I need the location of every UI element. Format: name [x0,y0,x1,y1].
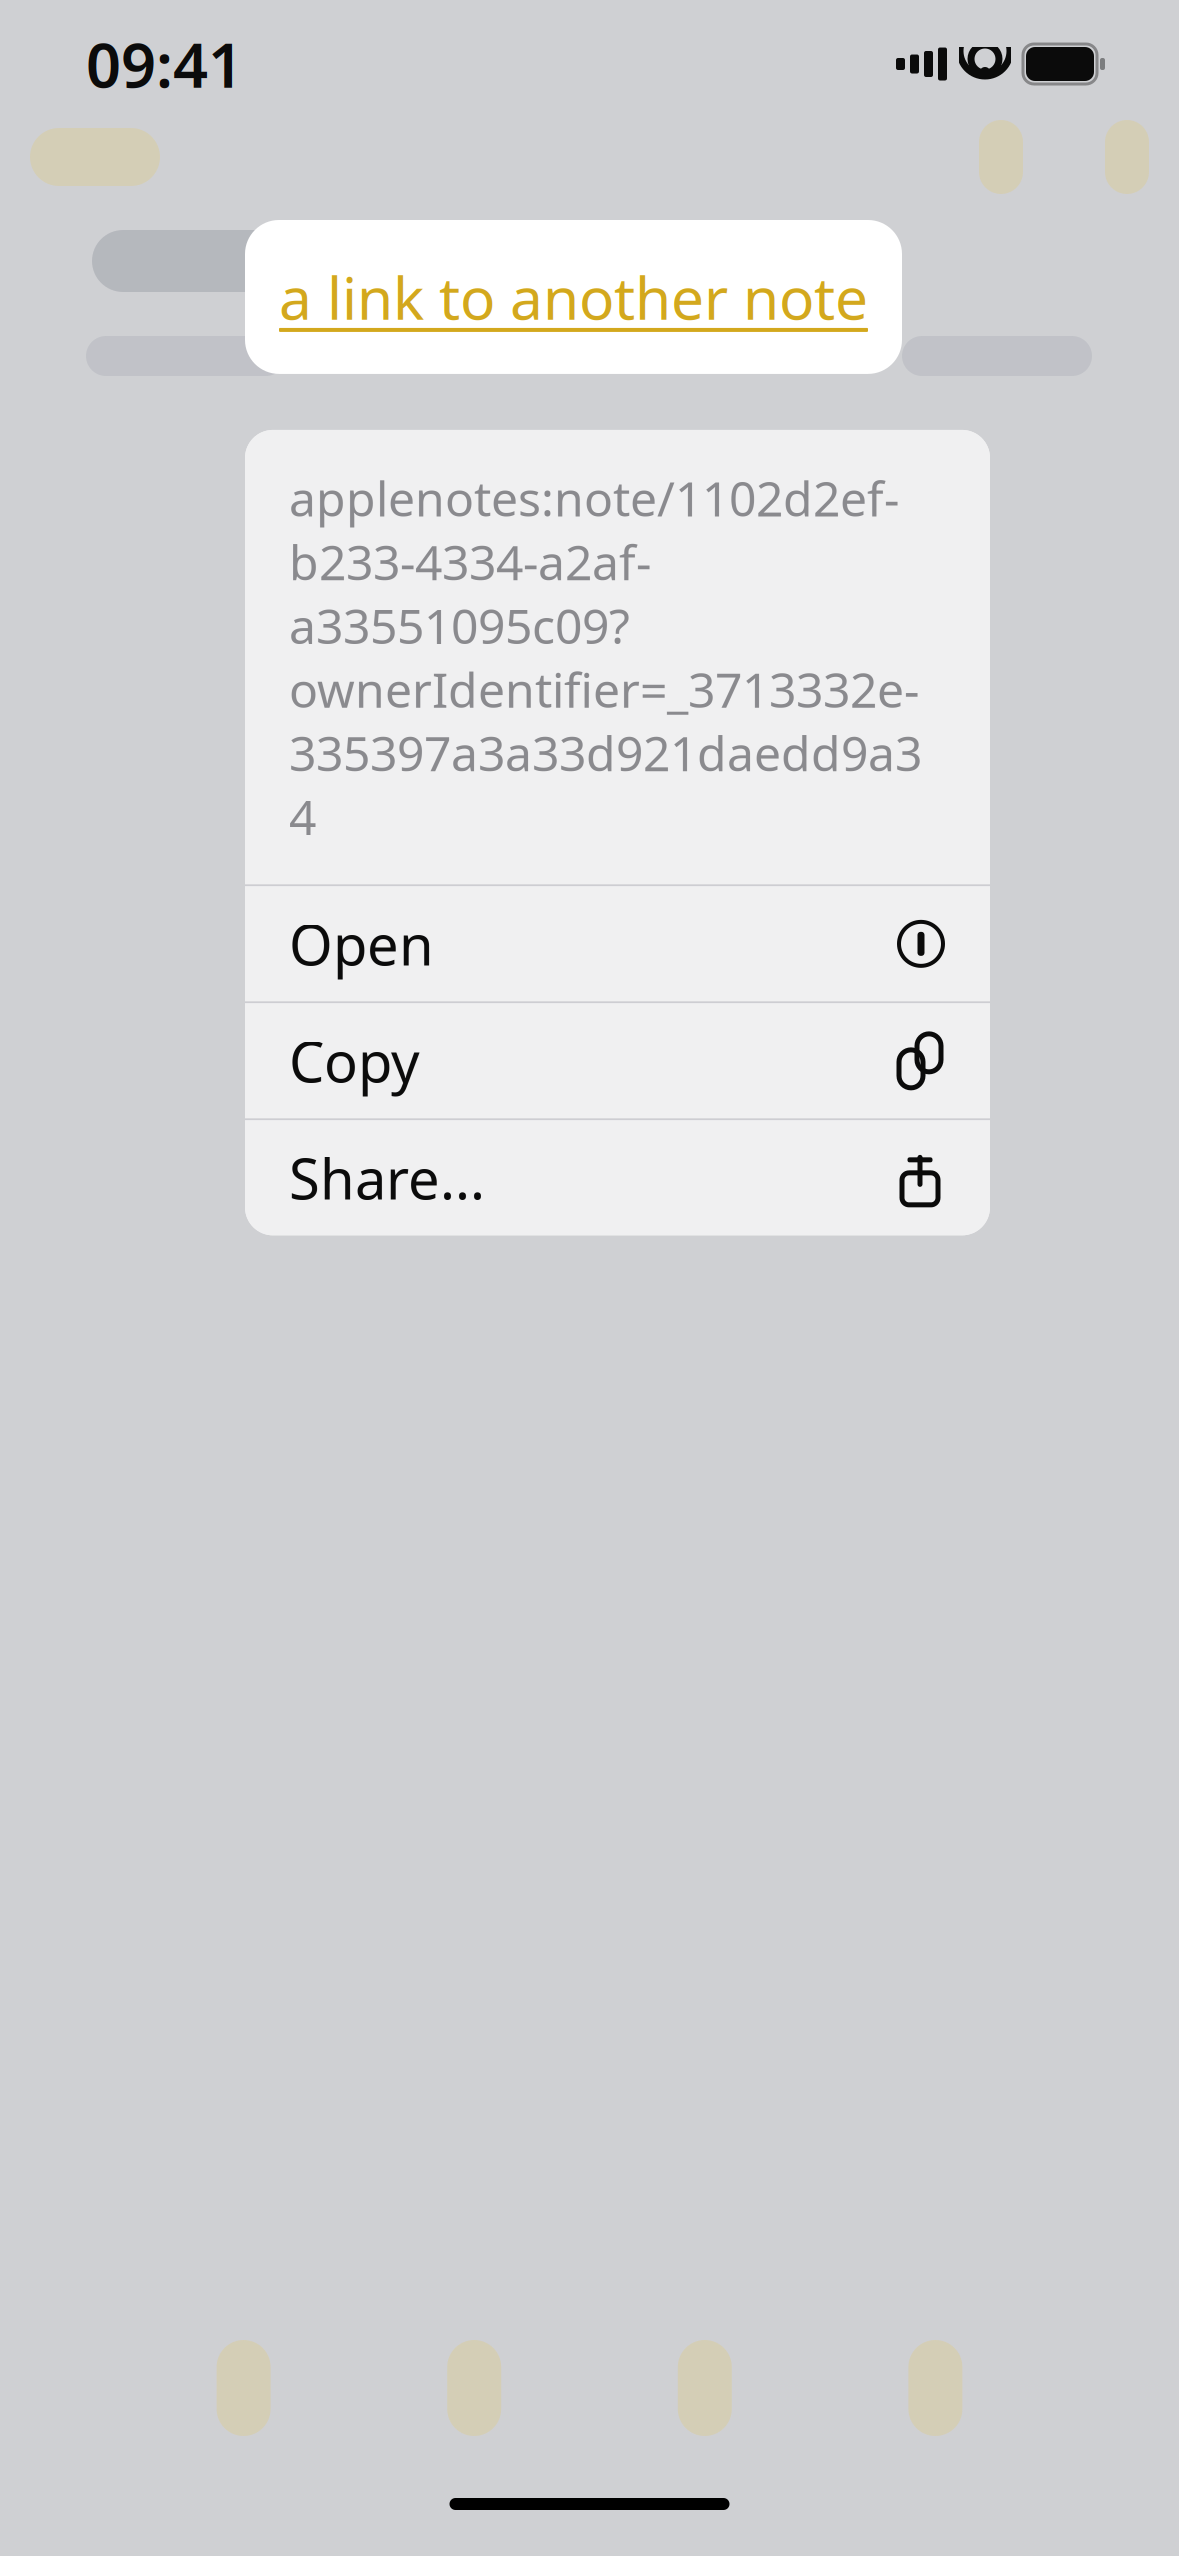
button[interactable]: Share... [245,1120,990,1235]
staticText: Open [289,907,434,981]
button[interactable]: Copy [245,1003,990,1118]
staticText: Share... [289,1141,485,1215]
button[interactable]: Open [245,886,990,1001]
staticText: a link to another note [279,258,868,336]
staticText: Copy [289,1024,420,1098]
staticText: applenotes:note/1102d2ef-b233-4334-a2af-… [289,466,922,848]
staticText: 09:41 [86,23,243,105]
